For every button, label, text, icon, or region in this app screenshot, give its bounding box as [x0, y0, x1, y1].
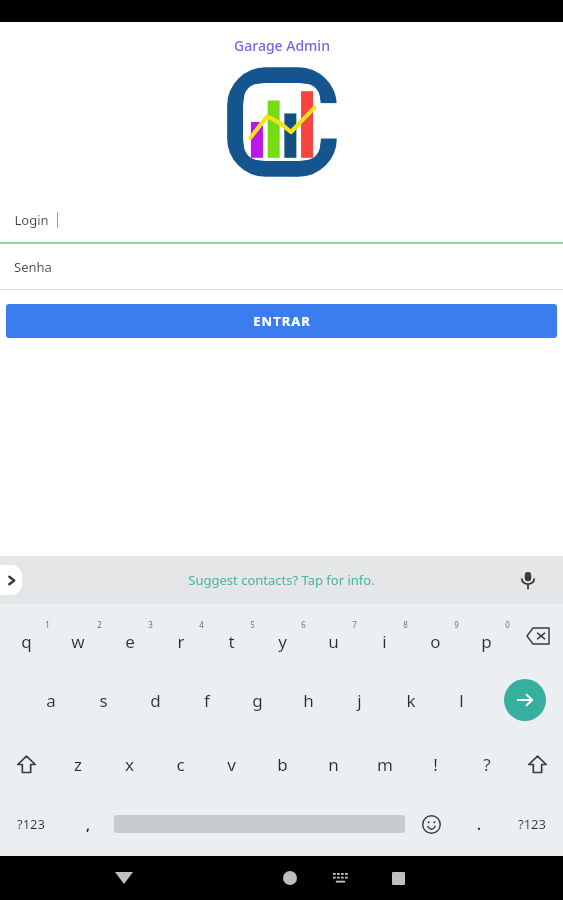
button[interactable]: z: [52, 732, 104, 796]
staticText: i: [382, 630, 387, 653]
button[interactable]: 8: [359, 604, 410, 668]
staticText: p: [481, 630, 492, 653]
button[interactable]: n: [308, 732, 359, 796]
button[interactable]: 6: [257, 604, 308, 668]
button[interactable]: 1: [0, 604, 52, 668]
staticText: m: [377, 753, 393, 776]
button[interactable]: Switch keyboard: [324, 861, 358, 895]
button[interactable]: h: [283, 668, 334, 732]
button[interactable]: Expand suggestions: [0, 565, 22, 595]
staticText: w: [71, 630, 85, 653]
staticText: 0: [505, 619, 510, 630]
button[interactable]: a: [25, 668, 77, 732]
staticText: b: [277, 753, 288, 776]
staticText: ENTRAR: [253, 312, 311, 330]
button[interactable]: c: [155, 732, 206, 796]
button[interactable]: Login: [0, 197, 563, 244]
staticText: 3: [148, 619, 153, 630]
button[interactable]: Home: [268, 856, 312, 900]
staticText: u: [328, 630, 339, 653]
staticText: 1: [45, 619, 50, 630]
button[interactable]: Backspace: [512, 604, 563, 668]
button[interactable]: Emoji: [405, 796, 457, 852]
staticText: 4: [199, 619, 204, 630]
staticText: Login: [14, 211, 49, 229]
button[interactable]: d: [129, 668, 181, 732]
button[interactable]: Shift: [0, 732, 52, 796]
staticText: ?123: [17, 815, 45, 833]
button[interactable]: 4: [155, 604, 206, 668]
button[interactable]: g: [232, 668, 283, 732]
staticText: r: [177, 630, 185, 653]
button[interactable]: l: [436, 668, 487, 732]
staticText: n: [328, 753, 339, 776]
button[interactable]: 9: [410, 604, 461, 668]
button[interactable]: b: [257, 732, 308, 796]
button[interactable]: ?123: [501, 796, 563, 852]
staticText: c: [176, 753, 185, 776]
staticText: g: [252, 689, 263, 712]
button[interactable]: .: [457, 796, 501, 852]
staticText: 7: [352, 619, 357, 630]
button[interactable]: v: [206, 732, 257, 796]
button[interactable]: s: [77, 668, 129, 732]
button[interactable]: ?: [461, 732, 512, 796]
button[interactable]: 2: [52, 604, 104, 668]
staticText: s: [99, 689, 108, 712]
button[interactable]: ?123: [0, 796, 62, 852]
staticText: z: [74, 753, 82, 776]
staticText: 5: [250, 619, 255, 630]
staticText: 9: [454, 619, 459, 630]
button[interactable]: m: [359, 732, 410, 796]
staticText: ?123: [518, 815, 546, 833]
staticText: k: [406, 689, 416, 712]
staticText: ?: [483, 753, 491, 776]
button[interactable]: Shift: [512, 732, 563, 796]
staticText: e: [125, 630, 135, 653]
staticText: j: [357, 689, 362, 712]
button[interactable]: Hide keyboard: [102, 856, 146, 900]
staticText: 8: [403, 619, 408, 630]
staticText: y: [278, 630, 287, 653]
button[interactable]: k: [385, 668, 436, 732]
staticText: t: [228, 630, 235, 653]
button[interactable]: x: [104, 732, 155, 796]
staticText: v: [227, 753, 236, 776]
button[interactable]: Enter: [487, 668, 563, 732]
staticText: x: [125, 753, 134, 776]
staticText: h: [303, 689, 314, 712]
button[interactable]: Space: [114, 796, 405, 852]
button[interactable]: !: [410, 732, 461, 796]
staticText: Suggest contacts? Tap for info.: [188, 571, 375, 589]
button[interactable]: 7: [308, 604, 359, 668]
staticText: d: [150, 689, 161, 712]
button[interactable]: f: [181, 668, 232, 732]
button[interactable]: Voice input: [513, 565, 543, 595]
staticText: ,: [86, 815, 90, 834]
staticText: !: [433, 753, 438, 776]
staticText: a: [46, 689, 56, 712]
button[interactable]: 0: [461, 604, 512, 668]
staticText: Senha: [14, 258, 52, 276]
staticText: 2: [97, 619, 102, 630]
staticText: l: [459, 689, 464, 712]
button[interactable]: ENTRAR: [6, 304, 557, 338]
staticText: o: [430, 630, 441, 653]
button[interactable]: Recents: [376, 856, 420, 900]
staticText: .: [477, 815, 481, 834]
button[interactable]: ,: [62, 796, 114, 852]
button[interactable]: 3: [104, 604, 155, 668]
button[interactable]: j: [334, 668, 385, 732]
staticText: Garage Admin: [234, 36, 330, 55]
staticText: 6: [301, 619, 306, 630]
staticText: f: [204, 689, 210, 712]
button[interactable]: Senha: [0, 244, 563, 290]
staticText: q: [21, 630, 32, 653]
button[interactable]: Suggest contacts? Tap for info.: [188, 571, 375, 589]
button[interactable]: 5: [206, 604, 257, 668]
